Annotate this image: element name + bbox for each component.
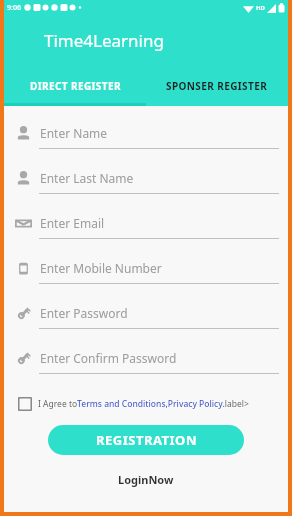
staticText: HD <box>256 4 265 12</box>
staticText: 9:06 <box>7 3 21 13</box>
staticText: I Agree toTerms and Conditions,Privacy P… <box>38 398 249 410</box>
staticText: SPONSER REGISTER <box>166 79 268 93</box>
button[interactable]: DIRECT REGISTER <box>4 65 146 106</box>
button[interactable]: LoginNow <box>108 469 184 490</box>
button[interactable]: Enter Email <box>4 209 288 254</box>
staticText: DIRECT REGISTER <box>30 79 121 93</box>
staticText: Enter Name <box>40 125 108 141</box>
button[interactable]: Enter Password <box>4 299 288 344</box>
staticText: Time4Learning <box>44 29 164 52</box>
staticText: Enter Password <box>40 305 128 321</box>
button[interactable]: SPONSER REGISTER <box>146 65 288 106</box>
staticText: REGISTRATION <box>96 431 197 449</box>
staticText: Enter Mobile Number <box>40 260 162 276</box>
staticText: Enter Email <box>40 215 105 231</box>
other: I agree checkbox <box>18 397 32 411</box>
button[interactable]: Enter Confirm Password <box>4 344 288 389</box>
button[interactable]: I agree checkbox <box>18 397 278 411</box>
button[interactable]: REGISTRATION <box>48 425 244 455</box>
staticText: Enter Last Name <box>40 170 134 186</box>
staticText: Enter Confirm Password <box>40 350 177 366</box>
button[interactable]: Enter Mobile Number <box>4 254 288 299</box>
button[interactable]: Enter Name <box>4 119 288 164</box>
button[interactable]: Enter Last Name <box>4 164 288 209</box>
